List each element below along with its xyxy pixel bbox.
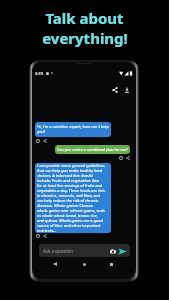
staticText: Talk about: [45, 8, 124, 28]
button[interactable]: Home: [78, 258, 90, 270]
button[interactable]: Regenerate: [118, 155, 124, 161]
button[interactable]: Share message: [125, 155, 131, 161]
button[interactable]: Recents: [105, 258, 117, 270]
staticText: I can provide some general guidelines th…: [37, 163, 105, 233]
button[interactable]: Back: [49, 258, 61, 270]
button[interactable]: Camera: [110, 248, 116, 254]
staticText: everything!: [42, 28, 128, 48]
staticText: Can you create a nutritional plan for me…: [57, 147, 128, 152]
button[interactable]: Can you create a nutritional plan for me…: [55, 145, 130, 154]
button[interactable]: Send: [118, 247, 127, 255]
button[interactable]: Hi, I'm a nutrition expert, how can I he…: [35, 122, 111, 137]
button[interactable]: I can provide some general guidelines th…: [35, 163, 111, 233]
button[interactable]: Share message: [42, 233, 48, 239]
button[interactable]: Share message: [42, 138, 48, 144]
button[interactable]: Share: [111, 86, 119, 94]
button[interactable]: Regenerate: [35, 233, 41, 239]
button[interactable]: Regenerate: [35, 138, 41, 144]
staticText: Hi, I'm a nutrition expert, how can I he…: [37, 124, 109, 134]
staticText: Ask a question: [43, 248, 74, 254]
button[interactable]: Ask a question: [39, 244, 130, 257]
button[interactable]: Download: [123, 86, 131, 94]
staticText: 3:39: [35, 71, 43, 76]
